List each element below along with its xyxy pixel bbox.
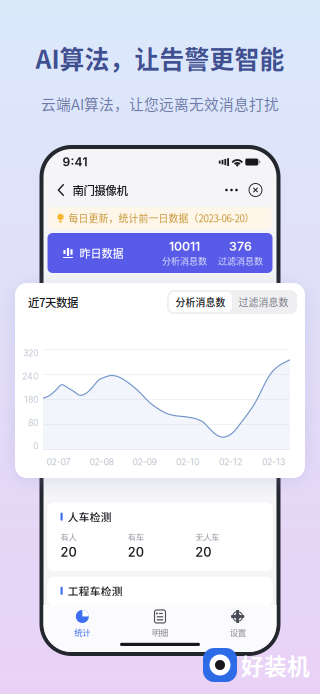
staticText: 180 — [24, 394, 38, 405]
staticText: 南门摄像机 — [72, 182, 127, 198]
staticText: 320 — [23, 348, 38, 358]
staticText: 02-13 — [262, 457, 285, 467]
staticText: 过滤消息数 — [218, 254, 263, 267]
staticText: 好装机 — [241, 649, 310, 681]
staticText: 工程车检测 — [68, 583, 123, 598]
button[interactable]: 过滤消息数 — [232, 292, 295, 312]
staticText: 80 — [28, 417, 38, 428]
staticText: 02-12 — [219, 457, 242, 467]
staticText: AI算法，让告警更智能 — [35, 40, 284, 76]
staticText: 昨日数据 — [79, 245, 123, 261]
staticText: 376 — [229, 239, 252, 254]
staticText: 分析消息数 — [175, 295, 225, 309]
staticText: 设置 — [230, 626, 246, 638]
staticText: 02-10 — [176, 457, 199, 467]
button[interactable]: 设置 — [199, 605, 276, 643]
staticText: 每日更新，统计前一日数据（2023-06-20） — [68, 211, 254, 225]
staticText: 20 — [60, 544, 76, 560]
staticText: 240 — [22, 371, 38, 381]
staticText: 有车 — [128, 531, 144, 543]
staticText: 近7天数据 — [28, 294, 78, 310]
staticText: 0 — [33, 441, 38, 451]
staticText: 10011 — [169, 239, 200, 254]
staticText: 分析消息数 — [162, 254, 207, 267]
button[interactable]: 统计 — [43, 605, 121, 643]
staticText: 过滤消息数 — [238, 295, 288, 309]
button[interactable]: Back — [51, 176, 70, 203]
button[interactable]: Close — [244, 179, 266, 201]
button[interactable]: More — [218, 178, 244, 202]
staticText: 9:41 — [62, 155, 87, 169]
staticText: 明细 — [152, 626, 168, 638]
button[interactable]: 明细 — [121, 605, 199, 643]
button[interactable]: 分析消息数 — [169, 292, 232, 312]
staticText: 有人 — [60, 531, 76, 543]
staticText: 20 — [195, 544, 211, 560]
staticText: 人车检测 — [68, 509, 112, 524]
staticText: 02-08 — [89, 457, 113, 467]
staticText: 云端AI算法，让您远离无效消息打扰 — [41, 93, 279, 114]
staticText: 20 — [128, 544, 144, 560]
staticText: 统计 — [74, 626, 90, 638]
staticText: 02-07 — [46, 457, 70, 467]
staticText: 02-09 — [132, 457, 156, 467]
staticText: 无人车 — [195, 531, 219, 543]
